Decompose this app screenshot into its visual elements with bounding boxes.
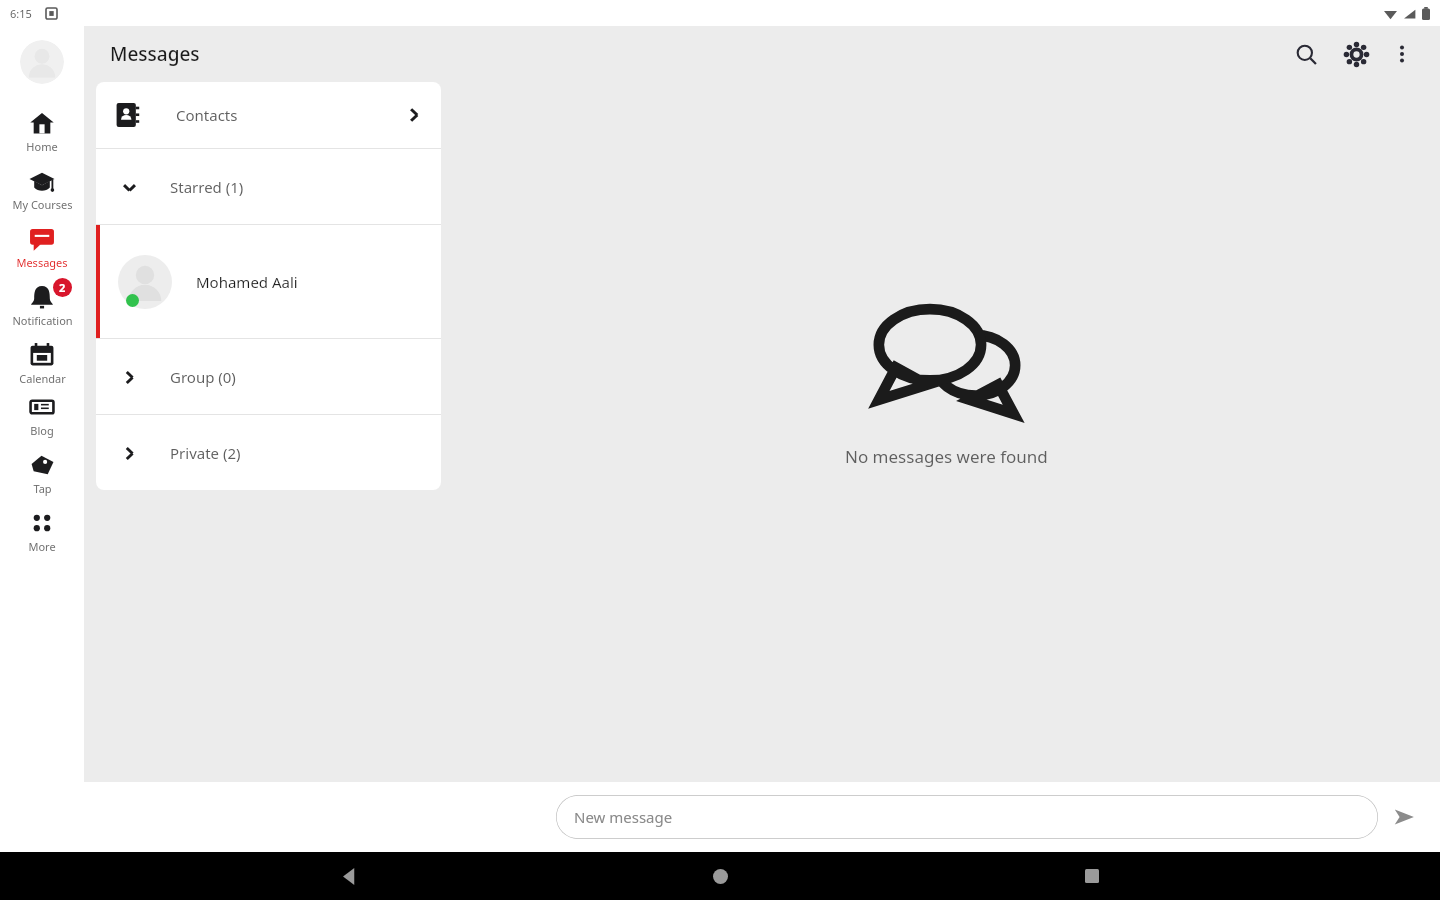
staticText: Contacts — [176, 105, 238, 125]
button[interactable]: Starred (1) — [96, 149, 441, 224]
button[interactable]: 2 — [0, 274, 84, 332]
staticText: 2 — [59, 280, 66, 295]
button[interactable]: Messages — [0, 216, 84, 274]
button[interactable]: Group (0) — [96, 339, 441, 414]
button[interactable]: Recent apps — [1069, 853, 1115, 899]
button[interactable]: Home — [0, 100, 84, 158]
button[interactable]: Back — [326, 853, 372, 899]
staticText: Mohamed Aali — [196, 272, 298, 292]
button[interactable]: New message — [556, 795, 1378, 839]
button[interactable]: Send — [1378, 791, 1430, 843]
button[interactable]: Calendar — [0, 332, 84, 390]
staticText: Home — [26, 139, 58, 154]
staticText: No messages were found — [845, 445, 1048, 468]
button[interactable]: More options — [1380, 32, 1424, 76]
staticText: My Courses — [12, 197, 73, 212]
button[interactable]: Home — [697, 853, 743, 899]
staticText: Group (0) — [170, 367, 236, 387]
staticText: New message — [574, 807, 673, 827]
button[interactable]: Mohamed Aali — [96, 225, 441, 338]
staticText: Messages — [110, 41, 200, 67]
button[interactable]: Profile — [20, 40, 64, 84]
staticText: More — [28, 539, 56, 554]
staticText: Private (2) — [170, 443, 241, 463]
staticText: Tap — [33, 481, 52, 496]
button[interactable]: Contacts — [96, 82, 441, 148]
staticText: 6:15 — [10, 6, 32, 21]
button[interactable]: Search — [1284, 32, 1328, 76]
staticText: Starred (1) — [170, 177, 244, 197]
button[interactable]: Blog — [0, 390, 84, 442]
staticText: Blog — [30, 423, 54, 438]
staticText: Calendar — [19, 371, 66, 386]
button[interactable]: More — [0, 500, 84, 558]
button[interactable]: Private (2) — [96, 415, 441, 490]
staticText: Notification — [12, 313, 73, 328]
button[interactable]: Tap — [0, 442, 84, 500]
staticText: Messages — [16, 255, 68, 270]
button[interactable]: My Courses — [0, 158, 84, 216]
button[interactable]: Settings — [1334, 32, 1378, 76]
